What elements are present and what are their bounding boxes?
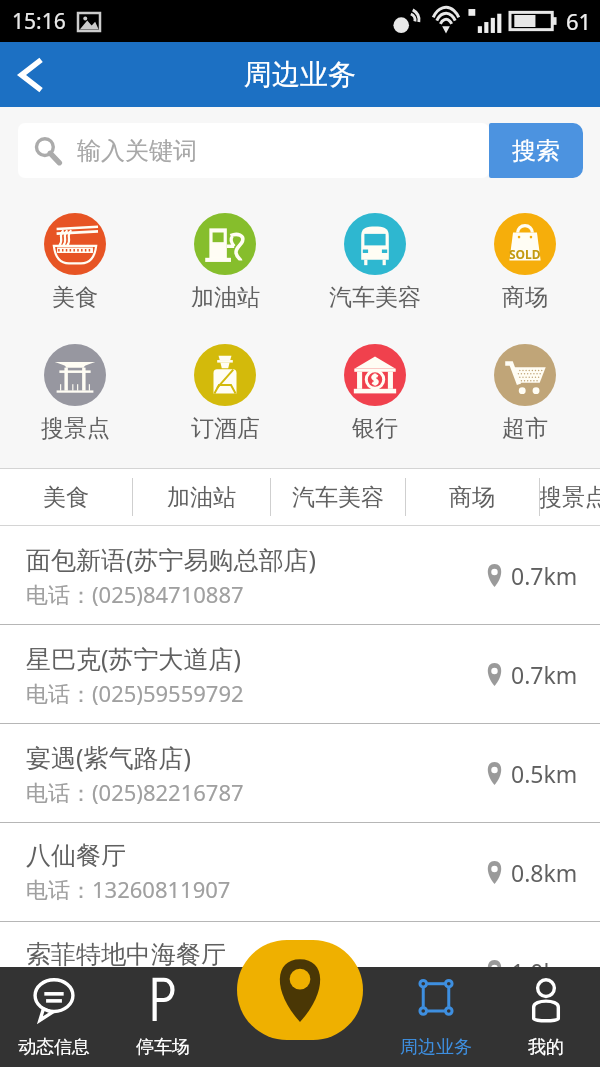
- button[interactable]: SOLD: [450, 178, 600, 309]
- staticText: 电话：(025)84223921: [26, 973, 244, 1003]
- staticText: 15:16: [12, 7, 66, 36]
- button[interactable]: 输入关键词: [18, 123, 489, 178]
- staticText: 商场: [502, 283, 548, 309]
- button[interactable]: 汽车美容: [270, 469, 405, 525]
- button[interactable]: 八仙餐厅: [0, 823, 600, 921]
- staticText: 面包新语(苏宁易购总部店): [26, 542, 317, 576]
- button[interactable]: 我的: [491, 967, 600, 1067]
- staticText: 银行: [352, 414, 398, 441]
- button[interactable]: Nearby services: [237, 940, 363, 1040]
- staticText: 动态信息: [18, 1036, 90, 1059]
- staticText: 0.7km: [511, 560, 578, 591]
- staticText: 0.8km: [511, 857, 578, 888]
- button[interactable]: 加油站: [150, 178, 300, 309]
- staticText: 1.0km: [511, 956, 578, 987]
- staticText: 星巴克(苏宁大道店): [26, 641, 242, 675]
- button[interactable]: 银行: [300, 309, 450, 441]
- button[interactable]: 宴遇(紫气路店): [0, 724, 600, 822]
- staticText: 商场: [449, 483, 495, 512]
- button[interactable]: 周边业务: [381, 967, 491, 1067]
- staticText: 超市: [502, 414, 548, 441]
- staticText: 0.5km: [511, 758, 578, 789]
- button[interactable]: 停车场: [108, 967, 217, 1067]
- staticText: 美食: [43, 483, 89, 512]
- button[interactable]: 面包新语(苏宁易购总部店): [0, 526, 600, 624]
- staticText: 索菲特地中海餐厅: [26, 939, 226, 970]
- staticText: 宴遇(紫气路店): [26, 740, 192, 774]
- staticText: 搜索: [512, 136, 560, 166]
- staticText: 我的: [528, 1036, 564, 1059]
- button[interactable]: Back: [0, 42, 62, 107]
- staticText: 美食: [52, 283, 98, 309]
- staticText: 电话：(025)59559792: [26, 678, 244, 708]
- staticText: 电话：13260811907: [26, 874, 231, 904]
- staticText: 输入关键词: [77, 136, 197, 166]
- staticText: 周边业务: [400, 1036, 472, 1059]
- staticText: 加油站: [167, 483, 236, 512]
- button[interactable]: 美食: [0, 469, 132, 525]
- button[interactable]: 美食: [0, 178, 150, 309]
- button[interactable]: 搜景点: [0, 309, 150, 441]
- button[interactable]: 搜景点: [539, 469, 600, 525]
- button[interactable]: 商场: [405, 469, 539, 525]
- staticText: SOLD: [509, 246, 541, 262]
- staticText: 周边业务: [244, 57, 356, 92]
- button[interactable]: 星巴克(苏宁大道店): [0, 625, 600, 723]
- staticText: 61: [566, 6, 592, 36]
- staticText: 汽车美容: [292, 483, 384, 512]
- staticText: 电话：(025)84710887: [26, 579, 244, 609]
- staticText: 电话：(025)82216787: [26, 777, 244, 807]
- staticText: 加油站: [191, 283, 260, 309]
- button[interactable]: 加油站: [132, 469, 270, 525]
- button[interactable]: 动态信息: [0, 967, 108, 1067]
- staticText: 八仙餐厅: [26, 840, 126, 871]
- staticText: 搜景点: [539, 483, 600, 512]
- staticText: 订酒店: [191, 414, 260, 441]
- staticText: 停车场: [136, 1036, 190, 1059]
- button[interactable]: 超市: [450, 309, 600, 441]
- button[interactable]: 订酒店: [150, 309, 300, 441]
- button[interactable]: 搜索: [489, 123, 583, 178]
- button[interactable]: 汽车美容: [300, 178, 450, 309]
- staticText: 汽车美容: [329, 283, 421, 309]
- staticText: 0.7km: [511, 659, 578, 690]
- staticText: 搜景点: [41, 414, 110, 441]
- button[interactable]: 索菲特地中海餐厅: [0, 922, 600, 1020]
